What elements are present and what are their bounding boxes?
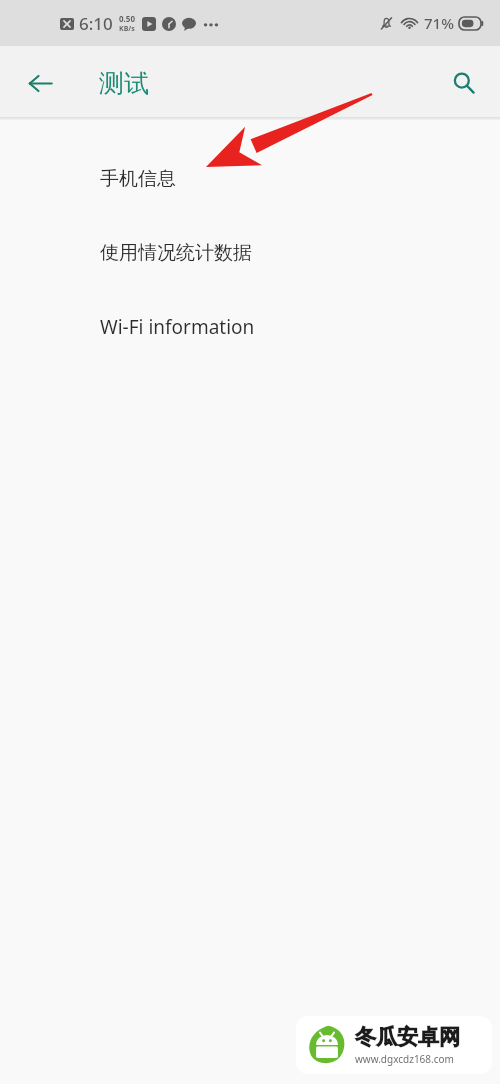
button[interactable]: 使用情况统计数据 xyxy=(0,236,500,270)
staticText: www.dgxcdz168.com xyxy=(355,1052,454,1066)
staticText: KB/s xyxy=(119,24,135,34)
staticText: 0.50 xyxy=(119,13,135,24)
staticText: 测试 xyxy=(99,68,149,99)
button[interactable]: Wi-Fi information xyxy=(0,310,500,344)
staticText: Wi-Fi information xyxy=(100,314,255,340)
staticText: 71% xyxy=(424,13,454,33)
button[interactable]: 手机信息 xyxy=(0,162,500,196)
staticText: 6:10 xyxy=(79,12,113,35)
staticText: 手机信息 xyxy=(100,167,176,191)
staticText: 使用情况统计数据 xyxy=(100,241,252,265)
staticText: 冬瓜安卓网 xyxy=(355,1024,460,1050)
button[interactable]: Back xyxy=(16,59,64,107)
button[interactable]: Search xyxy=(440,59,488,107)
